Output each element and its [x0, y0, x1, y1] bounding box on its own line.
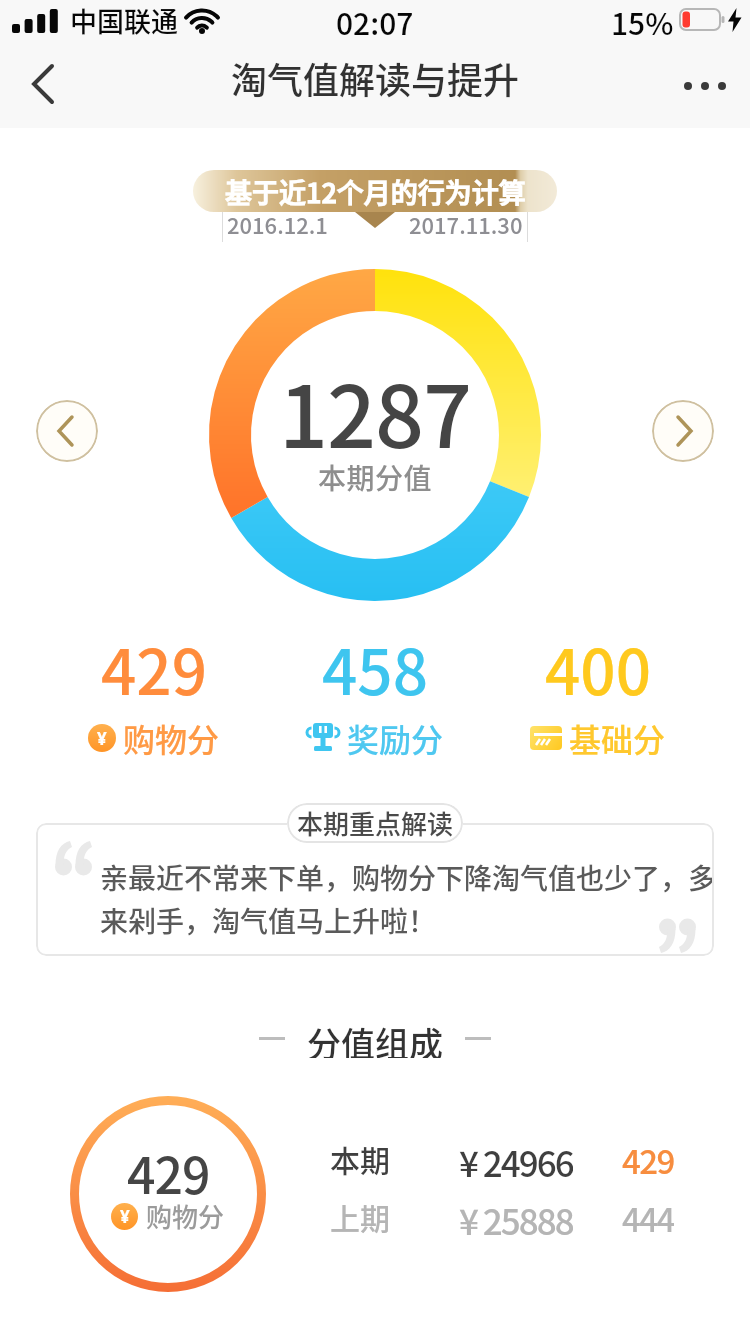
staticText: 444	[622, 1194, 674, 1238]
staticText: 中国联通	[70, 1, 178, 40]
staticText: 429	[622, 1136, 674, 1180]
staticText: 2017.11.30	[409, 208, 523, 238]
staticText: 2016.12.1	[227, 208, 328, 238]
staticText: 400	[545, 623, 652, 713]
staticText: ¥	[97, 727, 107, 750]
button[interactable]	[14, 54, 74, 114]
staticText: ¥ 24966	[459, 1136, 573, 1180]
staticText: 奖励分	[347, 715, 444, 761]
staticText: 亲最近不常来下单，购物分下降淘气值也少了，多 来剁手，淘气值马上升啦！	[100, 857, 714, 941]
staticText: 分值组成	[307, 1018, 443, 1058]
staticText: 淘气值解读与提升	[231, 52, 520, 104]
staticText: ¥ 25888	[459, 1194, 573, 1238]
staticText: 购物分	[146, 1197, 225, 1235]
button[interactable]	[36, 400, 98, 462]
staticText: 1287	[279, 348, 472, 473]
button[interactable]	[684, 82, 726, 90]
staticText: 02:07	[336, 0, 414, 40]
button[interactable]	[652, 400, 714, 462]
staticText: 基于近12个月的行为计算	[225, 172, 526, 211]
staticText: 458	[322, 623, 429, 713]
staticText: ¥	[120, 1205, 130, 1228]
staticText: 429	[101, 623, 208, 713]
staticText: 本期重点解读	[297, 804, 454, 842]
staticText: 购物分	[123, 715, 220, 761]
staticText: 基础分	[569, 715, 666, 761]
staticText: 429	[127, 1136, 210, 1208]
staticText: 本期	[330, 1137, 390, 1180]
staticText: 上期	[330, 1195, 390, 1238]
staticText: 本期分值	[318, 457, 433, 498]
staticText: 15%	[611, 0, 674, 40]
